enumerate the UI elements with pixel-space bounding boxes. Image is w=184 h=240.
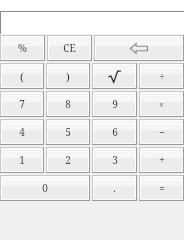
staticText: ÷ <box>159 69 165 83</box>
button[interactable]: CE <box>49 37 90 59</box>
button[interactable]: Backspace <box>96 37 182 59</box>
button[interactable]: 2 <box>48 149 88 171</box>
button[interactable]: . <box>94 177 135 199</box>
button[interactable]: ÷ <box>141 65 182 87</box>
staticText: % <box>18 41 27 55</box>
staticText: 4 <box>19 125 25 139</box>
staticText: − <box>159 125 165 139</box>
staticText: 0 <box>42 181 48 195</box>
button[interactable]: 3 <box>94 149 135 171</box>
button[interactable]: 5 <box>48 121 88 143</box>
button[interactable]: = <box>141 177 182 199</box>
staticText: ) <box>66 69 70 84</box>
button[interactable]: × <box>141 93 182 115</box>
button[interactable]: 4 <box>2 121 42 143</box>
button[interactable]: ) <box>48 65 88 87</box>
button[interactable]: + <box>141 149 182 171</box>
staticText: 1 <box>19 153 25 167</box>
staticText: × <box>159 99 164 110</box>
staticText: 2 <box>65 153 71 167</box>
button[interactable]: − <box>141 121 182 143</box>
button[interactable]: 8 <box>48 93 88 115</box>
staticText: ( <box>20 69 24 84</box>
button[interactable]: % <box>2 37 43 59</box>
staticText: 7 <box>19 97 25 111</box>
staticText: 9 <box>112 97 118 111</box>
staticText: + <box>159 153 165 167</box>
button[interactable]: 6 <box>94 121 135 143</box>
button[interactable]: ( <box>2 65 42 87</box>
staticText: 5 <box>65 125 71 139</box>
staticText: 8 <box>65 97 71 111</box>
staticText: CE <box>63 41 76 55</box>
button[interactable]: 1 <box>2 149 42 171</box>
staticText: = <box>159 181 165 195</box>
staticText: 3 <box>112 153 118 167</box>
staticText: . <box>113 181 116 195</box>
button[interactable]: 0 <box>2 177 88 199</box>
button[interactable]: 9 <box>94 93 135 115</box>
button[interactable]: 7 <box>2 93 42 115</box>
staticText: 6 <box>112 125 118 139</box>
button[interactable]: Square root <box>94 65 135 87</box>
